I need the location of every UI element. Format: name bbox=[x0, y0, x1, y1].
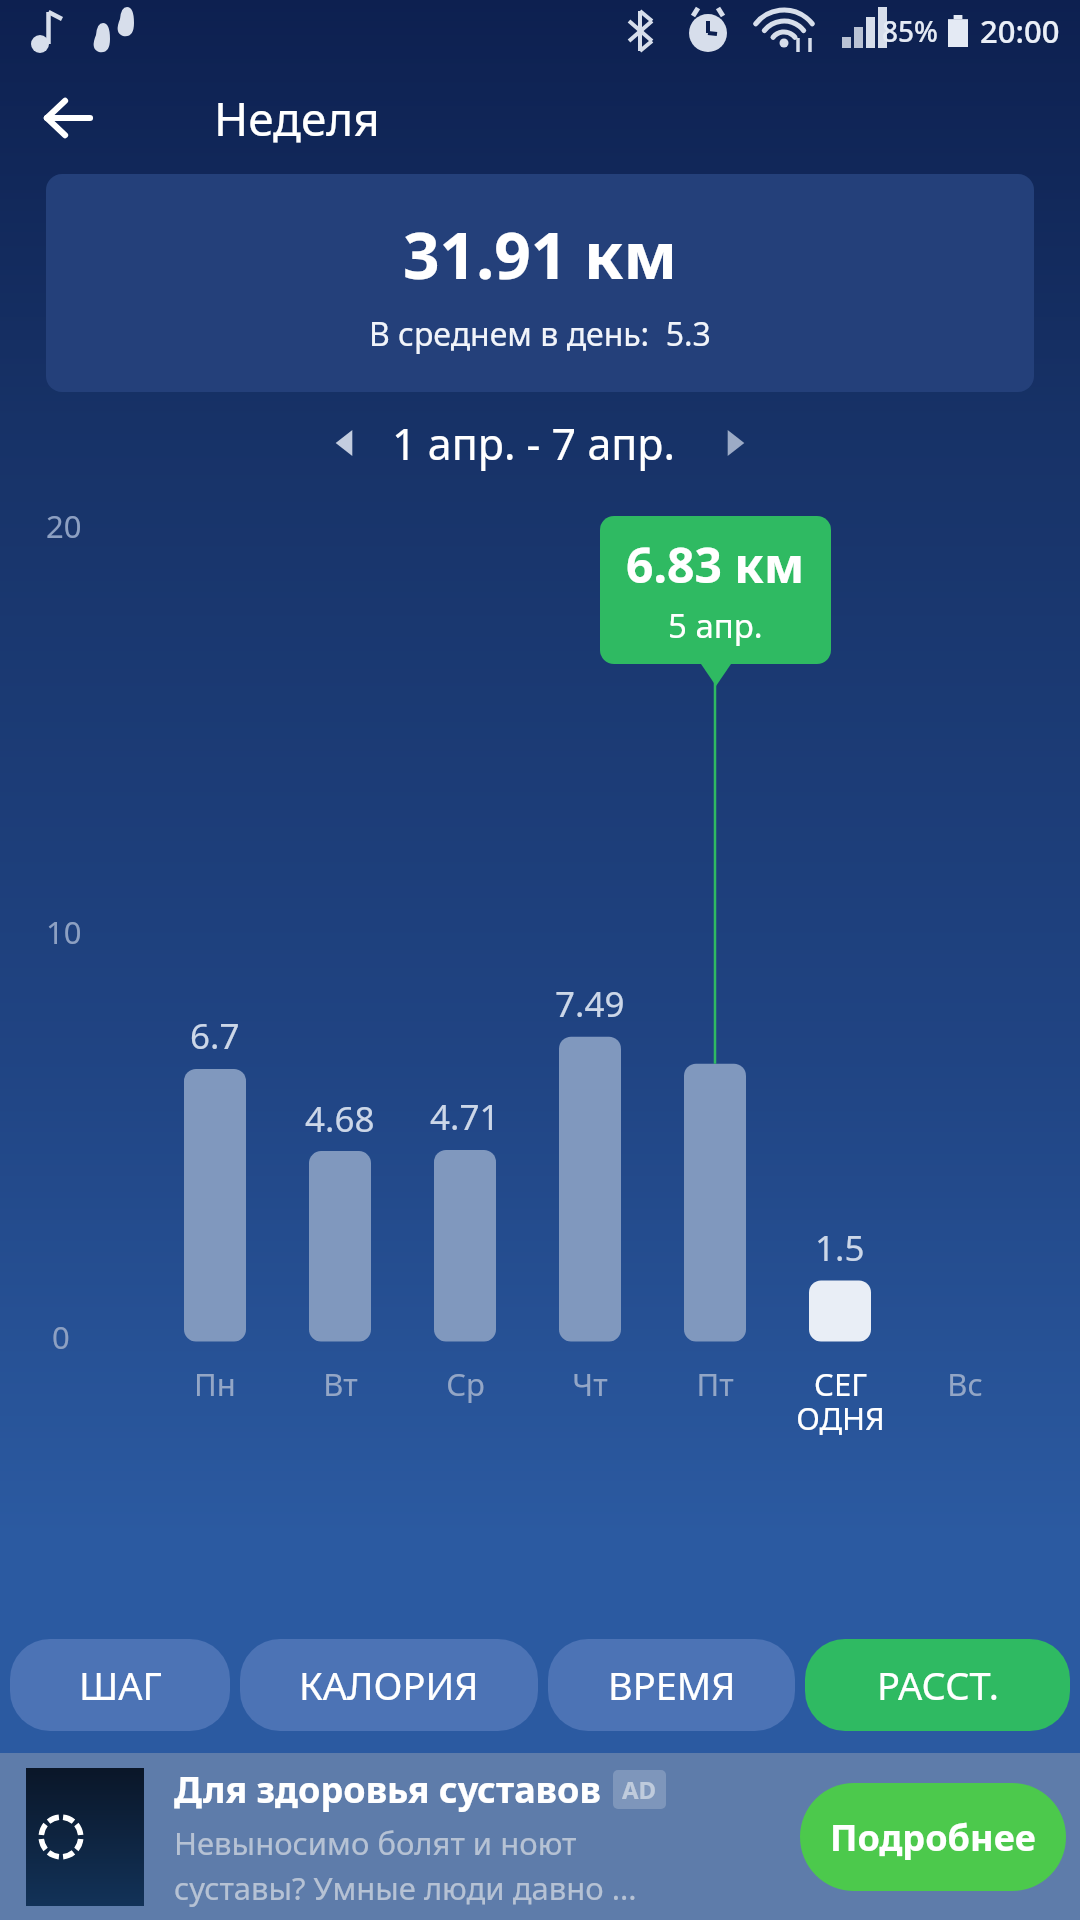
staticText: Пн bbox=[194, 1363, 236, 1405]
button[interactable]: РАССТ. bbox=[805, 1639, 1070, 1731]
staticText: Для здоровья суставов bbox=[174, 1765, 601, 1814]
staticText: 4.71 bbox=[430, 1093, 500, 1141]
staticText: 6.83 км bbox=[626, 532, 805, 597]
button[interactable]: 1 апр. - 7 апр. bbox=[392, 414, 676, 473]
staticText: Вт bbox=[323, 1363, 358, 1405]
staticText: 7.49 bbox=[555, 980, 625, 1028]
staticText: Неделя bbox=[214, 87, 380, 150]
staticText: 31.91 км bbox=[403, 211, 678, 298]
button[interactable]: КАЛОРИЯ bbox=[240, 1639, 538, 1731]
staticText: ВРЕМЯ bbox=[608, 1659, 736, 1711]
staticText: Ср bbox=[446, 1363, 485, 1405]
staticText: 1.5 bbox=[815, 1224, 865, 1272]
button[interactable]: Back bbox=[28, 78, 108, 158]
button[interactable]: Для здоровья суставов bbox=[0, 1753, 1080, 1920]
staticText: КАЛОРИЯ bbox=[299, 1659, 479, 1711]
staticText: AD bbox=[622, 1773, 657, 1806]
button[interactable]: Подробнее bbox=[800, 1783, 1066, 1891]
staticText: 4.68 bbox=[305, 1095, 375, 1143]
staticText: 0 bbox=[52, 1316, 70, 1358]
staticText: Пт bbox=[696, 1363, 734, 1405]
button[interactable]: ВРЕМЯ bbox=[548, 1639, 795, 1731]
staticText: 20 bbox=[46, 505, 82, 547]
staticText: 10 bbox=[46, 911, 82, 953]
staticText: РАССТ. bbox=[877, 1659, 999, 1711]
button[interactable]: Next week bbox=[700, 407, 772, 479]
staticText: 20:00 bbox=[980, 10, 1060, 52]
button[interactable]: 31.91 км bbox=[46, 174, 1034, 392]
staticText: 5 апр. bbox=[668, 603, 763, 648]
staticText: В среднем в день: 5.3 bbox=[369, 312, 711, 356]
staticText: Чт bbox=[572, 1363, 608, 1405]
staticText: Подробнее bbox=[830, 1813, 1036, 1862]
staticText: Невыносимо болят и ноют суставы? Умные л… bbox=[174, 1822, 637, 1909]
button[interactable]: 6.83 км bbox=[626, 532, 805, 648]
staticText: СЕГ ОДНЯ bbox=[796, 1363, 885, 1439]
staticText: Вс bbox=[947, 1363, 983, 1405]
staticText: 85% bbox=[882, 12, 938, 50]
staticText: ШАГ bbox=[79, 1659, 162, 1711]
button[interactable]: ШАГ bbox=[10, 1639, 230, 1731]
staticText: 6.7 bbox=[190, 1012, 240, 1060]
button[interactable]: Previous week bbox=[308, 407, 380, 479]
